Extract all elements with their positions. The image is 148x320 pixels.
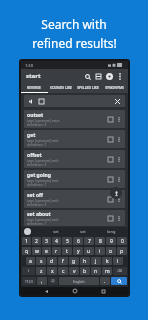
button[interactable]: Speak bbox=[106, 214, 115, 223]
button[interactable]: set off bbox=[24, 190, 125, 208]
button[interactable]: r bbox=[52, 247, 61, 255]
button[interactable]: 3 bbox=[42, 237, 51, 245]
button[interactable]: 1 bbox=[22, 237, 31, 245]
button[interactable]: u bbox=[84, 247, 94, 255]
button[interactable]: SOUNDS LIKE bbox=[47, 83, 74, 92]
button[interactable]: q bbox=[22, 247, 31, 255]
button[interactable]: x bbox=[47, 267, 57, 275]
button[interactable]: English bbox=[59, 277, 99, 285]
button[interactable]: get going bbox=[24, 170, 125, 188]
button[interactable]: v bbox=[69, 267, 79, 275]
button[interactable]: Numbers bbox=[22, 277, 36, 285]
button[interactable]: m bbox=[102, 267, 112, 275]
staticText: s bbox=[40, 258, 43, 265]
button[interactable]: More bbox=[115, 156, 122, 163]
button[interactable]: g bbox=[69, 257, 79, 265]
staticText: SPELLED LIKE bbox=[77, 85, 99, 90]
button[interactable]: Google bbox=[24, 228, 31, 235]
button[interactable]: w bbox=[32, 247, 41, 255]
button[interactable]: 2 bbox=[32, 237, 41, 245]
staticText: definitions: 1 bbox=[27, 143, 47, 147]
button[interactable]: Search bbox=[111, 277, 127, 285]
button[interactable]: z bbox=[36, 267, 46, 275]
staticText: definitions: 2 bbox=[27, 163, 47, 167]
staticText: r bbox=[55, 248, 58, 255]
button[interactable]: Clear bbox=[113, 97, 122, 106]
button[interactable]: Filter bbox=[93, 71, 104, 82]
button[interactable]: Shift bbox=[22, 267, 35, 275]
button[interactable]: More options bbox=[115, 72, 124, 81]
staticText: 6 bbox=[77, 238, 80, 245]
button[interactable]: Emoji bbox=[48, 277, 58, 285]
staticText: SOUNDS LIKE bbox=[50, 85, 72, 90]
button[interactable]: k bbox=[102, 257, 112, 265]
button[interactable]: e bbox=[42, 247, 51, 255]
staticText: start bbox=[26, 72, 41, 80]
staticText: definitions: 3 bbox=[27, 203, 47, 207]
button[interactable]: c bbox=[58, 267, 68, 275]
button[interactable]: t bbox=[62, 247, 72, 255]
button[interactable]: Speak bbox=[106, 135, 115, 144]
button[interactable]: Backspace bbox=[113, 267, 127, 275]
button[interactable]: o bbox=[106, 247, 116, 255]
button[interactable]: Speak bbox=[106, 155, 115, 164]
button[interactable]: get bbox=[24, 130, 125, 148]
staticText: tags: [synonym] verb bbox=[27, 179, 59, 183]
button[interactable]: More bbox=[115, 136, 122, 143]
button[interactable]: SPELLED LIKE bbox=[74, 83, 101, 92]
button[interactable]: More bbox=[115, 176, 122, 183]
staticText: set bbox=[53, 229, 59, 234]
staticText: tags: [synonym] verb bbox=[27, 199, 59, 203]
staticText: 4 bbox=[55, 238, 58, 245]
button[interactable]: a bbox=[26, 257, 35, 265]
button[interactable]: Home bbox=[71, 287, 79, 295]
button[interactable]: offset bbox=[24, 150, 125, 168]
button[interactable]: b bbox=[80, 267, 90, 275]
staticText: refined results! bbox=[32, 35, 117, 51]
button[interactable]: s bbox=[36, 257, 46, 265]
button[interactable]: set about bbox=[24, 210, 125, 226]
button[interactable]: Speak bbox=[106, 175, 115, 184]
button[interactable]: Speak bbox=[106, 195, 115, 204]
staticText: j bbox=[95, 258, 97, 265]
button[interactable]: 4 bbox=[52, 237, 61, 245]
button[interactable]: i bbox=[95, 247, 105, 255]
staticText: e bbox=[45, 248, 48, 255]
button[interactable]: Recents bbox=[99, 287, 107, 295]
button[interactable]: Help bbox=[104, 71, 115, 82]
button[interactable]: n bbox=[91, 267, 101, 275]
button[interactable]: Speak bbox=[106, 115, 115, 124]
button[interactable]: Sound bbox=[27, 97, 35, 105]
button[interactable]: Keyboard bbox=[37, 97, 45, 105]
button[interactable]: Voice search bbox=[110, 187, 122, 199]
button[interactable]: REVERSE bbox=[21, 83, 47, 92]
staticText: a bbox=[29, 258, 32, 265]
button[interactable]: More bbox=[115, 116, 122, 123]
button[interactable]: 5 bbox=[62, 237, 72, 245]
button[interactable]: outset bbox=[24, 110, 125, 128]
button[interactable]: More bbox=[115, 196, 122, 203]
button[interactable]: SYNONYMS bbox=[101, 83, 128, 92]
button[interactable]: Back bbox=[42, 287, 50, 295]
staticText: SYNONYMS bbox=[105, 85, 124, 90]
staticText: get going bbox=[27, 172, 51, 179]
button[interactable]: More bbox=[115, 215, 122, 222]
button[interactable]: 9 bbox=[106, 237, 116, 245]
button[interactable]: 8 bbox=[95, 237, 105, 245]
staticText: g bbox=[72, 258, 76, 265]
button[interactable]: j bbox=[91, 257, 101, 265]
button[interactable]: Search bbox=[82, 71, 93, 82]
staticText: f bbox=[62, 258, 64, 265]
button[interactable]: d bbox=[47, 257, 57, 265]
button[interactable]: 7 bbox=[84, 237, 94, 245]
button[interactable]: . bbox=[100, 277, 110, 285]
button[interactable]: , bbox=[37, 277, 47, 285]
button[interactable]: h bbox=[80, 257, 90, 265]
staticText: 0 bbox=[121, 238, 124, 245]
button[interactable]: l bbox=[113, 257, 123, 265]
button[interactable]: 6 bbox=[73, 237, 83, 245]
button[interactable]: y bbox=[73, 247, 83, 255]
button[interactable]: 0 bbox=[117, 237, 127, 245]
button[interactable]: f bbox=[58, 257, 68, 265]
button[interactable]: p bbox=[117, 247, 127, 255]
